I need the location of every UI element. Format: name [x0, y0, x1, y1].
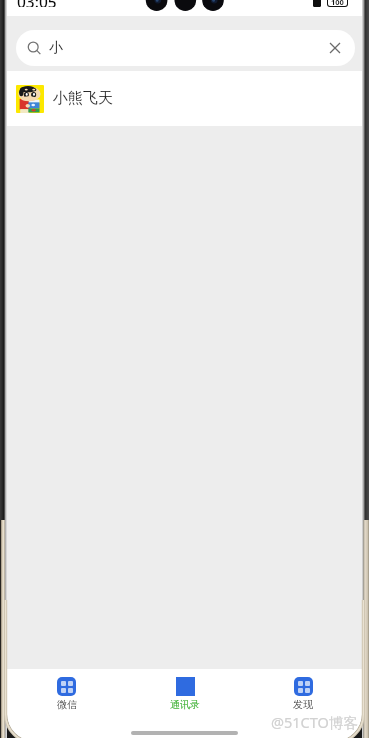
button[interactable]: 微信 — [7, 669, 126, 711]
staticText: 03:05 — [17, 0, 57, 7]
staticText: 发现 — [293, 698, 313, 711]
staticText: 小 — [49, 39, 63, 57]
button[interactable]: Clear search — [320, 33, 350, 63]
button[interactable]: 通讯录 — [126, 669, 244, 711]
button[interactable]: 小 — [16, 30, 355, 66]
button[interactable]: 小熊飞天 — [7, 71, 362, 126]
staticText: 100 — [331, 0, 344, 6]
staticText: 微信 — [57, 698, 77, 711]
staticText: 小熊飞天 — [53, 89, 113, 108]
staticText: 通讯录 — [170, 698, 200, 711]
staticText: @51CTO博客 — [271, 712, 358, 732]
button[interactable]: 发现 — [244, 669, 362, 711]
